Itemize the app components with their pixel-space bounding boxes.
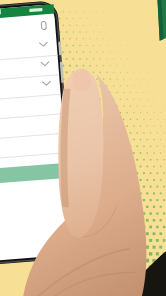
button[interactable]: Selecionar opção — [0, 53, 58, 76]
button[interactable]: Selecionar opção — [0, 76, 58, 99]
button[interactable]: Selecionar opção — [0, 30, 58, 53]
button[interactable]: Salvar — [1, 156, 59, 171]
button[interactable]: Anexar — [46, 17, 58, 29]
